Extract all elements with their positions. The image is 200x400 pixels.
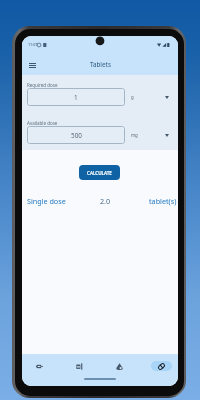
button[interactable]: Drops	[100, 354, 139, 374]
staticText: mg	[131, 132, 138, 138]
staticText: Tablets	[90, 60, 111, 68]
button[interactable]: 500	[27, 126, 125, 144]
button[interactable]: CALCULATE	[79, 165, 120, 180]
button[interactable]: Injections	[22, 354, 59, 374]
button[interactable]: Infusions	[60, 354, 99, 374]
staticText: g	[131, 94, 134, 100]
staticText: CALCULATE	[87, 170, 112, 176]
staticText: 1	[74, 93, 78, 102]
button[interactable]: Select unit	[127, 88, 177, 106]
button[interactable]: Open navigation menu	[24, 57, 40, 73]
staticText: 11:07	[28, 42, 38, 47]
button[interactable]: 1	[27, 88, 125, 106]
staticText: 2.0	[100, 196, 111, 206]
button[interactable]: Select unit	[127, 126, 177, 144]
staticText: tablet(s)	[149, 196, 177, 206]
button[interactable]: Tablets	[142, 354, 178, 374]
staticText: 500	[71, 131, 82, 140]
staticText: Single dose	[27, 196, 66, 206]
staticText: Available dose	[27, 120, 58, 126]
staticText: Required dose	[27, 82, 58, 88]
